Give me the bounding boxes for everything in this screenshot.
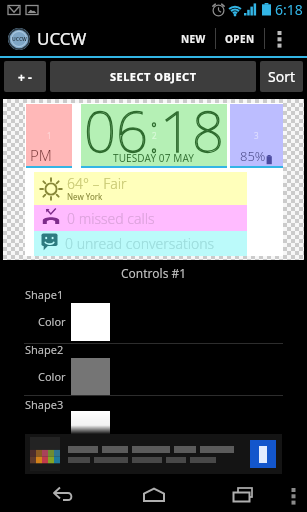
staticText: New York <box>67 191 103 202</box>
button[interactable]: Sort <box>260 61 303 92</box>
staticText: 6:18 <box>275 0 303 19</box>
staticText: TUESDAY 07 MAY <box>113 151 195 165</box>
staticText: OPEN <box>225 32 255 46</box>
staticText: UCCW <box>37 27 87 50</box>
button[interactable]: Menu <box>279 478 307 512</box>
staticText: Sort <box>268 67 295 86</box>
button[interactable]: NEW <box>172 21 215 56</box>
staticText: 06:18 <box>84 92 224 154</box>
button[interactable]: + - <box>4 61 46 92</box>
button[interactable]: SELECT OBJECT <box>50 61 256 92</box>
staticText: 0 missed calls <box>67 209 155 228</box>
staticText: 0 unread conversations <box>65 234 215 253</box>
staticText: Controls #1 <box>121 265 187 281</box>
staticText: NEW <box>181 32 206 46</box>
staticText: Shape3 <box>25 397 64 412</box>
staticText: Color <box>38 314 66 329</box>
staticText: Shape2 <box>25 342 64 357</box>
button[interactable]: Pick color <box>71 411 110 434</box>
button[interactable]: More options <box>265 21 293 56</box>
button[interactable]: Pick color <box>71 358 110 396</box>
button[interactable]: OPEN <box>216 21 264 56</box>
staticText: SELECT OBJECT <box>110 69 197 84</box>
staticText: UCCW <box>12 36 27 43</box>
button[interactable]: Back <box>44 478 84 512</box>
staticText: + - <box>18 69 32 85</box>
button[interactable]: Recents <box>224 478 264 512</box>
staticText: 3 <box>254 130 259 141</box>
staticText: Shape1 <box>25 287 64 302</box>
staticText: 1 <box>47 130 52 141</box>
staticText: 64° – Fair <box>67 174 127 193</box>
staticText: PM <box>30 145 52 165</box>
staticText: 85% <box>240 147 266 165</box>
staticText: Color <box>38 369 66 384</box>
staticText: 2 <box>152 130 157 141</box>
button[interactable] <box>25 434 282 474</box>
button[interactable]: Home <box>134 478 174 512</box>
